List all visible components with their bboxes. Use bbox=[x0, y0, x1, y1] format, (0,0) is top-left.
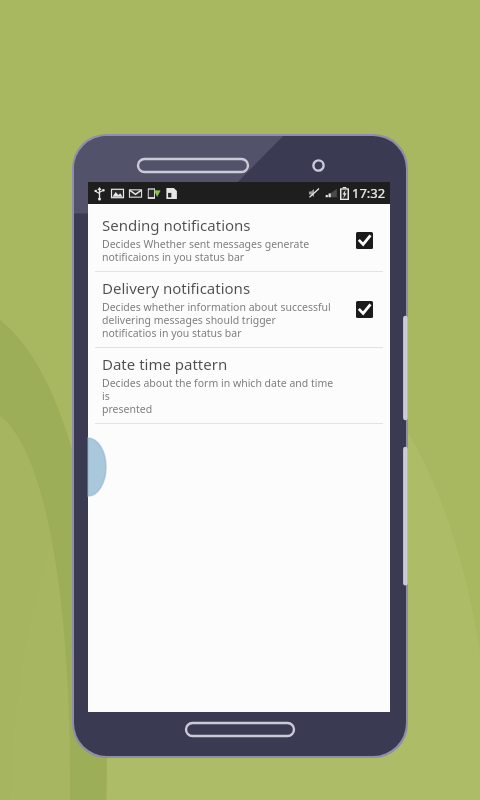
staticText: Date time pattern bbox=[102, 354, 228, 374]
button[interactable]: Toggle Sending notifications bbox=[348, 224, 380, 256]
staticText: Decides Whether sent messages generate n… bbox=[102, 237, 310, 264]
staticText: Sending notifications bbox=[102, 215, 251, 235]
staticText: Decides about the form in which date and… bbox=[102, 376, 340, 416]
staticText: Delivery notifications bbox=[102, 278, 251, 298]
button[interactable]: Sending notifications bbox=[88, 209, 390, 271]
button[interactable]: Toggle Delivery notifications bbox=[348, 293, 380, 325]
staticText: Decides whether information about succes… bbox=[102, 300, 331, 340]
button[interactable]: Delivery notifications bbox=[88, 272, 390, 347]
staticText: 17:32 bbox=[352, 184, 386, 202]
button[interactable]: Date time pattern bbox=[88, 348, 390, 423]
